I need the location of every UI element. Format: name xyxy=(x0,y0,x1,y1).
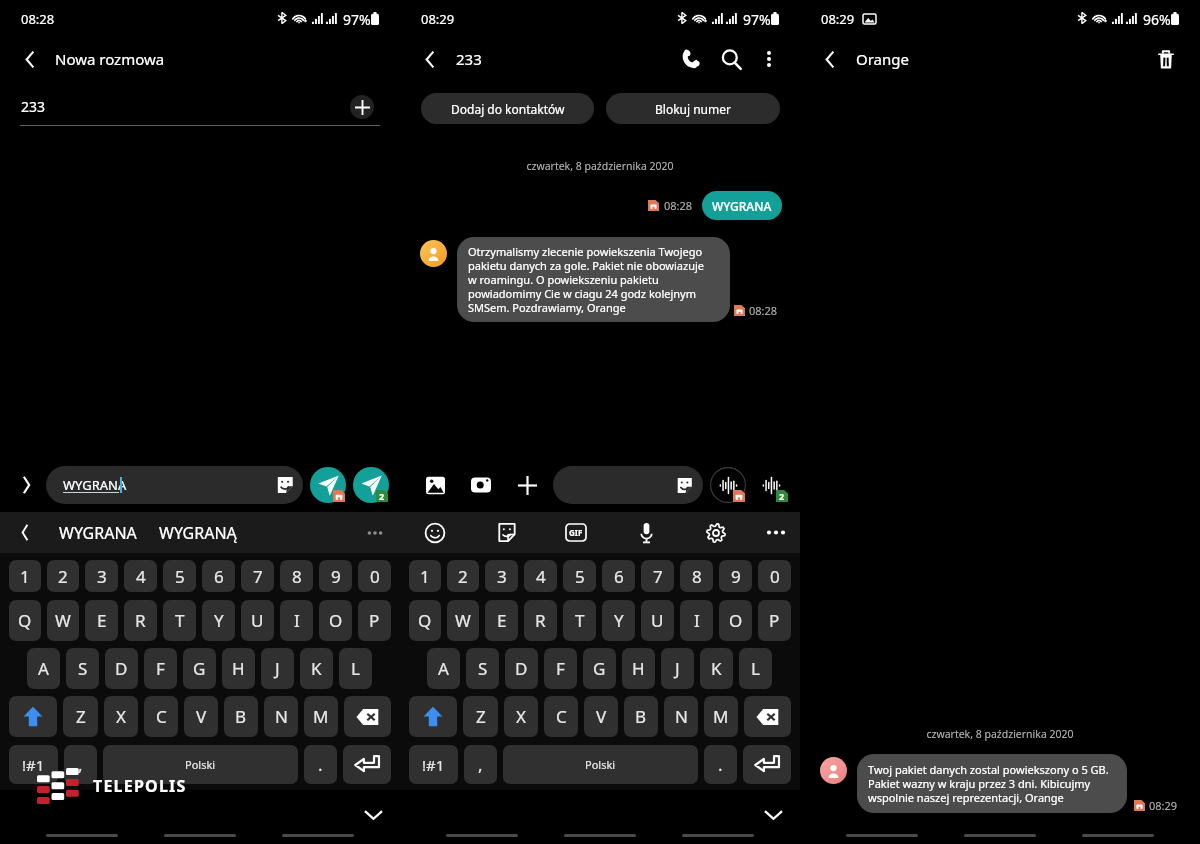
button[interactable]: 6 xyxy=(202,560,235,592)
button[interactable]: !#1 xyxy=(409,745,458,784)
button[interactable]: Voice input xyxy=(624,512,668,553)
button[interactable]: , xyxy=(64,745,97,784)
button[interactable]: . xyxy=(704,745,737,784)
button[interactable]: Voice message xyxy=(710,467,746,503)
button[interactable]: R xyxy=(124,600,157,641)
button[interactable]: Polski xyxy=(103,745,298,784)
button[interactable]: T xyxy=(163,600,196,641)
button[interactable]: P xyxy=(758,600,791,641)
button[interactable]: Blokuj numer xyxy=(606,93,780,124)
button[interactable]: W xyxy=(447,600,479,641)
button[interactable]: WYGRANA xyxy=(59,522,137,544)
button[interactable]: Back xyxy=(9,38,51,80)
button[interactable]: J xyxy=(661,648,694,689)
button[interactable]: Z xyxy=(63,696,98,737)
button[interactable] xyxy=(409,696,457,737)
button[interactable]: K xyxy=(700,648,733,689)
button[interactable]: B xyxy=(624,696,658,737)
button[interactable]: M xyxy=(704,696,738,737)
button[interactable]: 3 xyxy=(485,560,518,592)
button[interactable]: C xyxy=(144,696,178,737)
button[interactable]: Previous suggestions xyxy=(4,512,46,553)
button[interactable]: WYGRANA xyxy=(46,466,303,504)
button[interactable]: I xyxy=(280,600,313,641)
button[interactable]: Hide keyboard xyxy=(360,802,386,828)
button[interactable]: C xyxy=(544,696,578,737)
button[interactable]: 0 xyxy=(758,560,791,592)
button[interactable]: S xyxy=(466,648,499,689)
button[interactable]: 7 xyxy=(241,560,274,592)
button[interactable]: K xyxy=(300,648,333,689)
button[interactable]: 9 xyxy=(319,560,352,592)
button[interactable]: More suggestions xyxy=(353,512,397,553)
button[interactable]: T xyxy=(563,600,596,641)
button[interactable]: E xyxy=(485,600,518,641)
button[interactable]: X xyxy=(504,696,538,737)
button[interactable]: . xyxy=(304,745,337,784)
button[interactable]: I xyxy=(680,600,713,641)
button[interactable]: N xyxy=(264,696,298,737)
button[interactable] xyxy=(9,696,57,737)
button[interactable]: More options xyxy=(750,40,788,78)
button[interactable]: U xyxy=(241,600,274,641)
button[interactable]: !#1 xyxy=(9,745,58,784)
button[interactable]: WYGRANA xyxy=(702,191,782,220)
button[interactable]: 8 xyxy=(680,560,713,592)
button[interactable]: 2 xyxy=(47,560,79,592)
button[interactable]: B xyxy=(224,696,258,737)
button[interactable]: L xyxy=(339,648,372,689)
button[interactable]: GIF xyxy=(554,512,598,553)
button[interactable]: N xyxy=(664,696,698,737)
button[interactable]: Q xyxy=(409,600,441,641)
button[interactable]: Send message xyxy=(310,467,346,503)
button[interactable]: L xyxy=(739,648,772,689)
button[interactable]: Hide keyboard xyxy=(760,802,786,828)
button[interactable]: Settings xyxy=(694,512,738,553)
button[interactable]: 5 xyxy=(163,560,196,592)
button[interactable]: 6 xyxy=(602,560,635,592)
button[interactable]: V xyxy=(184,696,218,737)
button[interactable]: W xyxy=(47,600,79,641)
button[interactable]: Dodaj do kontaktów xyxy=(421,93,594,124)
button[interactable]: Search xyxy=(712,40,750,78)
button[interactable]: Delete xyxy=(1144,38,1188,80)
button[interactable]: S xyxy=(66,648,99,689)
button[interactable]: Gallery xyxy=(420,470,450,500)
button[interactable]: Twoj pakiet danych zostal powiekszony o … xyxy=(857,754,1127,813)
button[interactable]: 3 xyxy=(85,560,118,592)
button[interactable]: Call xyxy=(672,39,712,79)
button[interactable]: 1 xyxy=(409,560,441,592)
button[interactable]: Camera xyxy=(466,470,496,500)
button[interactable]: F xyxy=(144,648,177,689)
button[interactable]: Polski xyxy=(503,745,698,784)
button[interactable]: 0 xyxy=(358,560,391,592)
button[interactable]: 4 xyxy=(124,560,157,592)
button[interactable]: D xyxy=(505,648,538,689)
button[interactable]: Z xyxy=(463,696,498,737)
button[interactable]: A xyxy=(427,648,460,689)
button[interactable] xyxy=(743,745,791,784)
button[interactable]: 5 xyxy=(563,560,596,592)
button[interactable]: Expand xyxy=(9,468,43,502)
button[interactable]: Back xyxy=(809,38,851,80)
button[interactable]: WYGRANĄ xyxy=(159,522,237,544)
button[interactable]: Back xyxy=(409,38,451,80)
button[interactable]: 9 xyxy=(719,560,752,592)
button[interactable]: D xyxy=(105,648,138,689)
button[interactable] xyxy=(744,696,791,737)
button[interactable]: Q xyxy=(9,600,41,641)
button[interactable]: Emoji xyxy=(413,512,457,553)
button[interactable]: G xyxy=(583,648,616,689)
button[interactable] xyxy=(343,745,391,784)
button[interactable] xyxy=(344,696,391,737)
button[interactable]: 2 xyxy=(447,560,479,592)
button[interactable]: Stickers xyxy=(484,512,528,553)
button[interactable]: 1 xyxy=(9,560,41,592)
button[interactable]: Add recipient xyxy=(350,95,374,119)
button[interactable]: More options xyxy=(754,512,798,553)
button[interactable]: M xyxy=(304,696,338,737)
button[interactable]: R xyxy=(524,600,557,641)
button[interactable]: 8 xyxy=(280,560,313,592)
button[interactable]: H xyxy=(222,648,255,689)
button[interactable]: X xyxy=(104,696,138,737)
